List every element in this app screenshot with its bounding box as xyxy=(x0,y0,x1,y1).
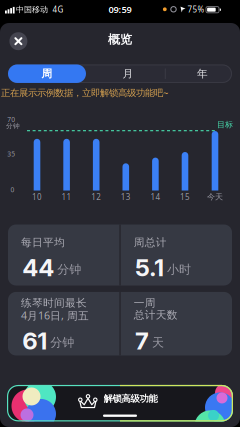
staticText: 总计天数 xyxy=(134,308,178,321)
staticText: 15 xyxy=(180,191,190,202)
staticText: 61 xyxy=(22,326,47,355)
staticText: 09:59 xyxy=(108,3,131,16)
staticText: 今天 xyxy=(207,192,223,202)
staticText: 解锁高级功能 xyxy=(103,393,157,404)
staticText: 35 xyxy=(7,149,15,158)
staticText: 每日平均 xyxy=(21,236,65,249)
button[interactable]: 月 xyxy=(93,64,163,83)
staticText: 小时 xyxy=(167,262,191,277)
staticText: 44 xyxy=(22,253,54,282)
staticText: 70 xyxy=(7,115,15,124)
button[interactable]: 年 xyxy=(167,64,237,83)
staticText: 14 xyxy=(150,191,160,202)
staticText: 分钟 xyxy=(57,262,81,277)
staticText: 11 xyxy=(62,191,72,202)
button[interactable]: 周 xyxy=(8,64,86,83)
staticText: 天 xyxy=(152,335,164,350)
staticText: 年 xyxy=(197,67,208,80)
staticText: 分钟 xyxy=(6,122,20,130)
staticText: 周总计 xyxy=(134,236,167,249)
staticText: 周 xyxy=(41,67,52,80)
staticText: 7 xyxy=(135,326,149,355)
staticText: 正在展示示例数据，立即解锁高级功能吧~ xyxy=(1,86,168,99)
button[interactable]: 关闭 xyxy=(9,32,27,50)
staticText: 10 xyxy=(32,191,42,202)
staticText: 4G xyxy=(52,4,63,15)
staticText: 一周 xyxy=(134,296,156,309)
staticText: 练琴时间最长 xyxy=(21,296,87,309)
button[interactable]: 解锁高级功能 xyxy=(7,385,233,421)
staticText: 分钟 xyxy=(50,335,74,350)
staticText: 月 xyxy=(122,67,133,80)
staticText: 12 xyxy=(91,191,101,202)
staticText: 13 xyxy=(121,191,131,202)
staticText: 5.1 xyxy=(135,253,164,282)
staticText: 目标 xyxy=(217,120,233,129)
staticText: 0 xyxy=(11,185,15,194)
staticText: 中国移动 xyxy=(16,5,48,14)
staticText: 4月16日, 周五 xyxy=(21,308,89,322)
staticText: 概览 xyxy=(108,32,132,47)
staticText: 75% xyxy=(187,4,204,15)
